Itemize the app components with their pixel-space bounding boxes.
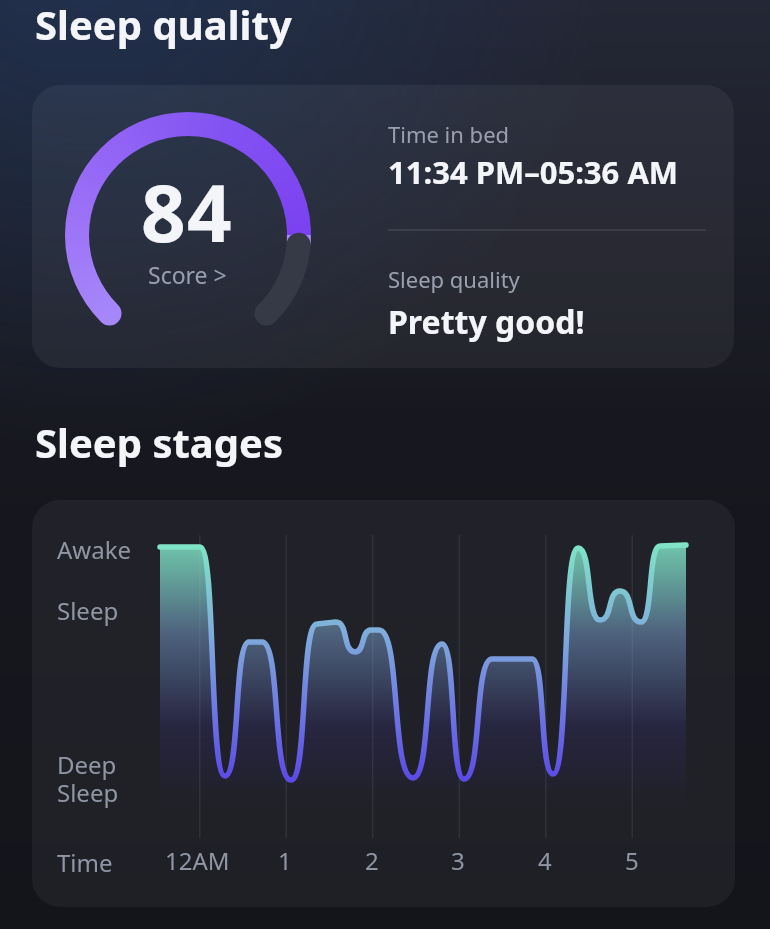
staticText: 5 bbox=[625, 844, 639, 877]
staticText: Deep bbox=[57, 748, 117, 781]
staticText: 1 bbox=[278, 844, 292, 877]
staticText: Awake bbox=[57, 533, 132, 566]
button[interactable] bbox=[32, 500, 735, 907]
staticText: Time bbox=[57, 846, 113, 879]
staticText: Sleep stages bbox=[35, 415, 284, 469]
button[interactable]: Score > bbox=[135, 259, 239, 289]
staticText: 11:34 PM–05:36 AM bbox=[388, 151, 679, 193]
staticText: Pretty good! bbox=[388, 300, 585, 344]
staticText: Sleep quality bbox=[35, 0, 292, 51]
staticText: 84 bbox=[141, 159, 234, 265]
staticText: 2 bbox=[365, 844, 379, 877]
staticText: Score > bbox=[148, 259, 227, 289]
staticText: Sleep bbox=[57, 594, 119, 627]
button[interactable] bbox=[32, 85, 734, 368]
staticText: 12AM bbox=[165, 844, 230, 877]
staticText: 4 bbox=[538, 844, 552, 877]
staticText: Sleep bbox=[57, 776, 119, 809]
staticText: 3 bbox=[451, 844, 465, 877]
staticText: Time in bed bbox=[388, 119, 510, 149]
staticText: Sleep quality bbox=[388, 264, 520, 294]
